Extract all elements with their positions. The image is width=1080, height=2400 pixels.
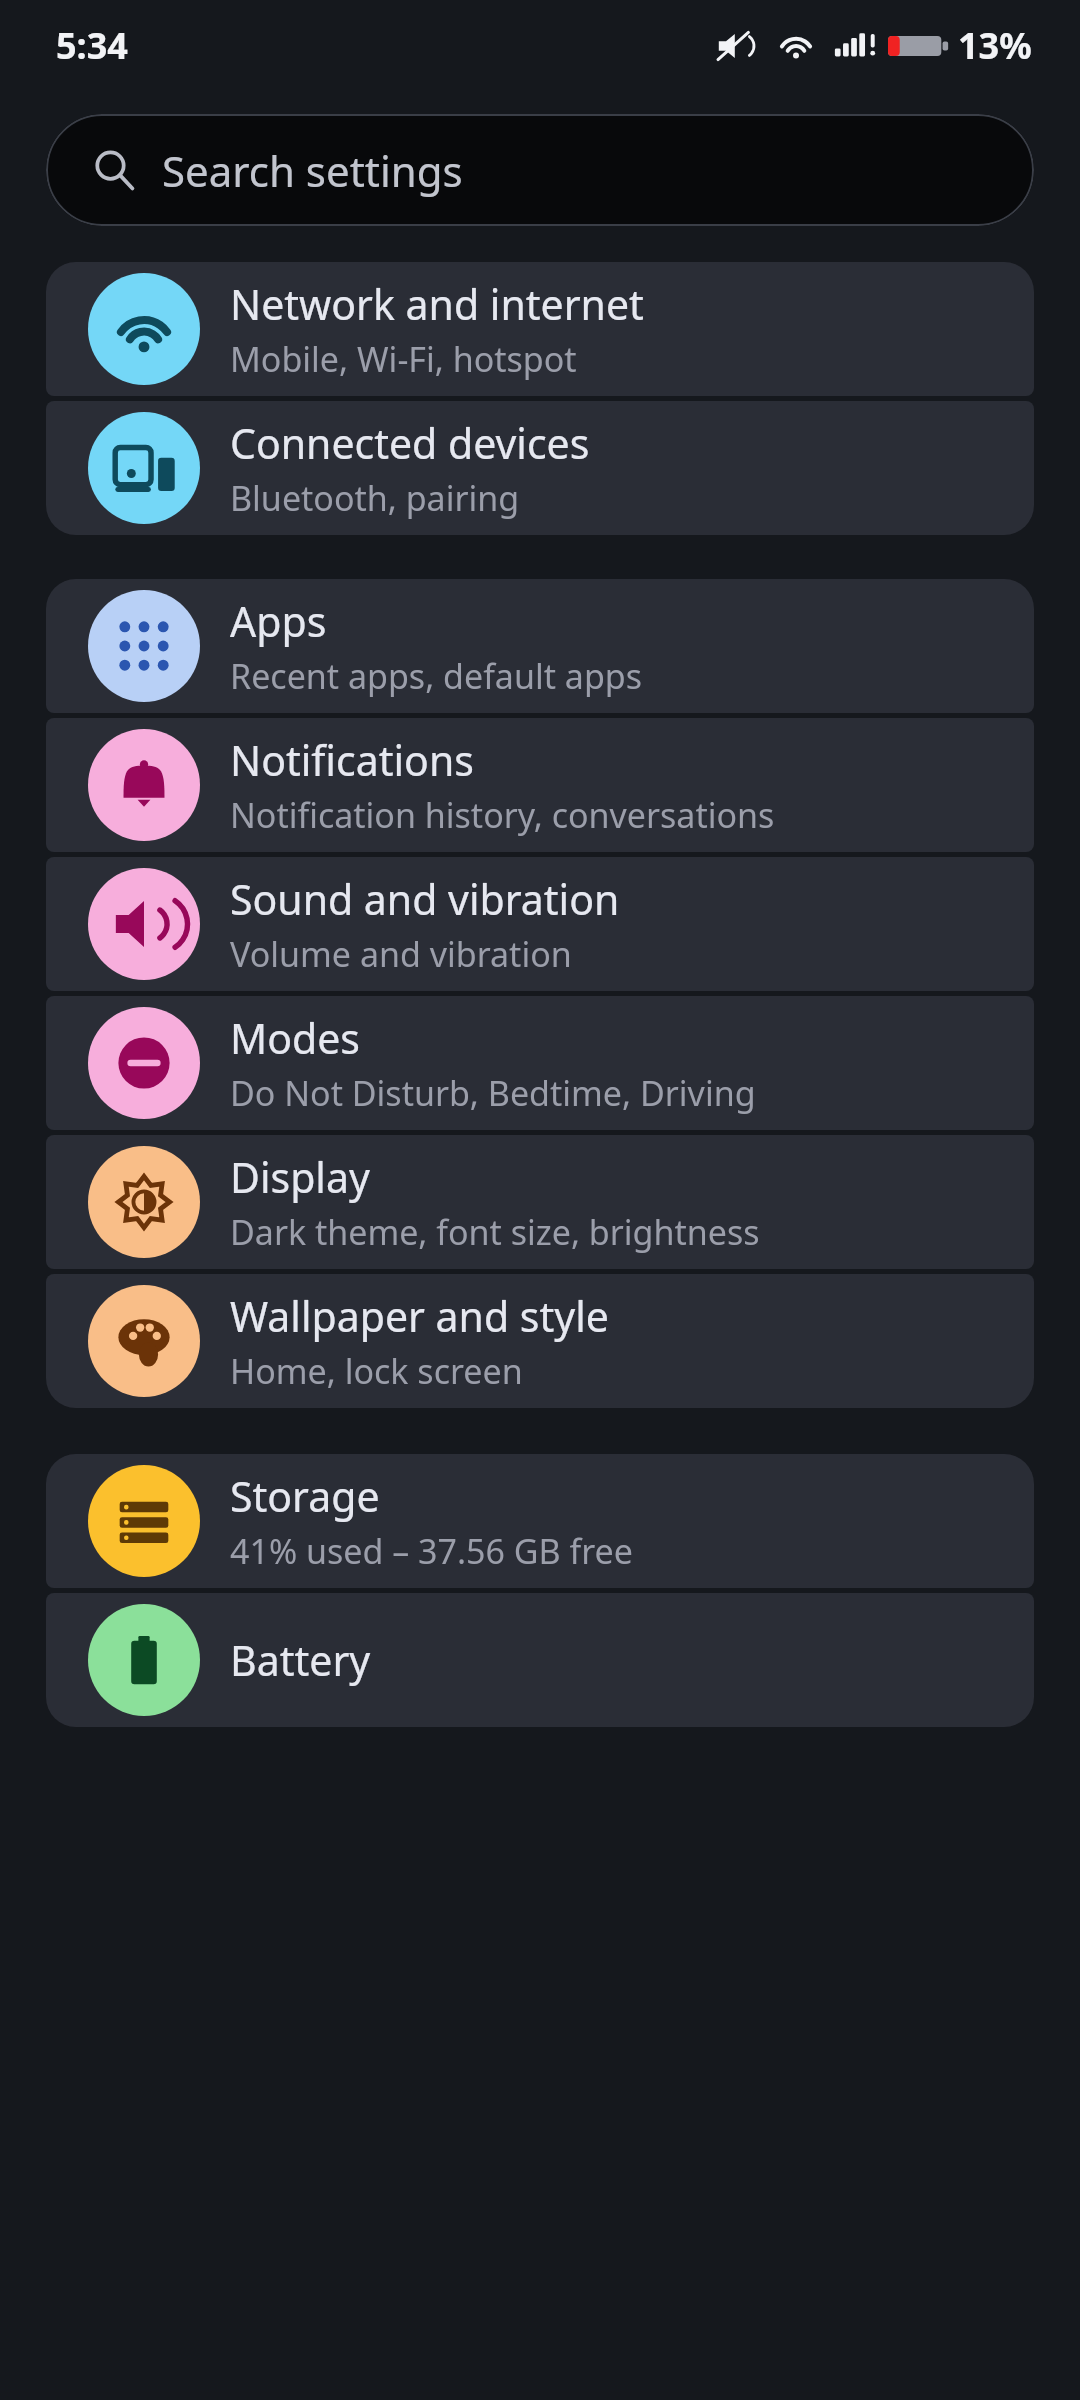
button[interactable]: Wallpaper and style	[46, 1274, 1034, 1408]
staticText: Modes	[230, 1010, 360, 1066]
staticText: Storage	[230, 1468, 380, 1524]
staticText: Mobile, Wi-Fi, hotspot	[230, 336, 577, 382]
staticText: Bluetooth, pairing	[230, 475, 520, 521]
button[interactable]: Sound and vibration	[46, 857, 1034, 991]
staticText: Search settings	[162, 142, 463, 199]
staticText: Notification history, conversations	[230, 792, 775, 838]
staticText: Volume and vibration	[230, 931, 572, 977]
button[interactable]: Battery	[46, 1593, 1034, 1727]
staticText: Apps	[230, 593, 327, 649]
staticText: Network and internet	[230, 276, 644, 332]
button[interactable]: Modes	[46, 996, 1034, 1130]
staticText: Connected devices	[230, 415, 590, 471]
staticText: Display	[230, 1149, 370, 1205]
staticText: Wallpaper and style	[230, 1288, 609, 1344]
button[interactable]: Notifications	[46, 718, 1034, 852]
staticText: 5:34	[56, 21, 128, 70]
staticText: 13%	[958, 21, 1032, 70]
staticText: Do Not Disturb, Bedtime, Driving	[230, 1070, 756, 1116]
button[interactable]: Search settings	[46, 114, 1034, 226]
staticText: Notifications	[230, 732, 474, 788]
button[interactable]: Storage	[46, 1454, 1034, 1588]
button[interactable]: Apps	[46, 579, 1034, 713]
staticText: Battery	[230, 1632, 371, 1688]
staticText: 41% used – 37.56 GB free	[230, 1528, 633, 1574]
button[interactable]: Network and internet	[46, 262, 1034, 396]
button[interactable]: Connected devices	[46, 401, 1034, 535]
staticText: Sound and vibration	[230, 871, 620, 927]
button[interactable]: Display	[46, 1135, 1034, 1269]
staticText: Home, lock screen	[230, 1348, 523, 1394]
staticText: Dark theme, font size, brightness	[230, 1209, 760, 1255]
staticText: Recent apps, default apps	[230, 653, 643, 699]
